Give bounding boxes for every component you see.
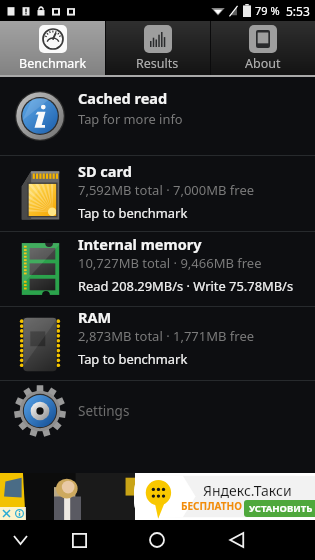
button[interactable]: Recents: [58, 520, 100, 560]
button[interactable]: Benchmark: [0, 21, 105, 75]
button[interactable]: Results: [105, 21, 210, 75]
staticText: УСТАНОВИТЬ: [249, 502, 313, 515]
staticText: Tap to benchmark: [78, 204, 188, 222]
staticText: Results: [136, 55, 179, 72]
button[interactable]: RAM: [0, 307, 315, 380]
button[interactable]: About: [210, 21, 315, 75]
staticText: Settings: [78, 402, 130, 420]
staticText: RAM: [78, 307, 112, 327]
button[interactable]: Яндекс.Такси: [0, 473, 315, 520]
staticText: 5:53: [286, 3, 310, 19]
staticText: 79 %: [255, 3, 280, 18]
staticText: Read 208.29MB/s · Write 75.78MB/s: [78, 277, 294, 295]
staticText: Benchmark: [19, 55, 87, 72]
staticText: 10,727MB total · 9,466MB free: [78, 254, 262, 272]
staticText: SD card: [78, 161, 132, 181]
staticText: БЕСПЛАТНО: [181, 499, 242, 513]
button[interactable]: Settings: [0, 381, 315, 441]
staticText: Яндекс.Такси: [203, 481, 292, 500]
button[interactable]: Internal memory: [0, 232, 315, 306]
button[interactable]: Back: [215, 520, 257, 560]
staticText: About: [245, 55, 281, 72]
button[interactable]: Home: [136, 520, 178, 560]
staticText: 7,592MB total · 7,000MB free: [78, 181, 255, 199]
button[interactable]: Hide keyboard: [4, 524, 36, 556]
staticText: Internal memory: [78, 234, 202, 254]
button[interactable]: Cached read: [0, 77, 315, 155]
staticText: Tap for more info: [78, 110, 183, 128]
staticText: Tap to benchmark: [78, 350, 188, 368]
staticText: Cached read: [78, 88, 168, 108]
button[interactable]: SD card: [0, 156, 315, 231]
staticText: 2,873MB total · 1,771MB free: [78, 327, 255, 345]
